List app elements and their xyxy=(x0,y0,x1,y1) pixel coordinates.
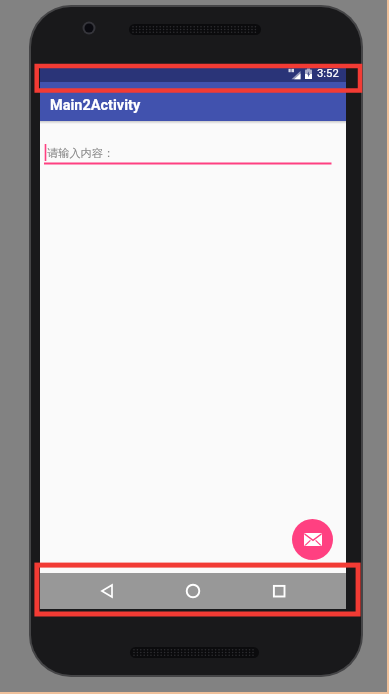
button[interactable] xyxy=(265,577,293,605)
staticText: Main2Activity xyxy=(50,97,141,114)
button[interactable] xyxy=(292,519,333,560)
button[interactable]: Main2Activity xyxy=(40,82,346,121)
staticText: 3:52 xyxy=(317,67,339,80)
staticText: 请输入内容： xyxy=(47,146,115,160)
button[interactable] xyxy=(179,577,207,605)
button[interactable]: 请输入内容： xyxy=(44,143,332,167)
button[interactable] xyxy=(93,577,121,605)
